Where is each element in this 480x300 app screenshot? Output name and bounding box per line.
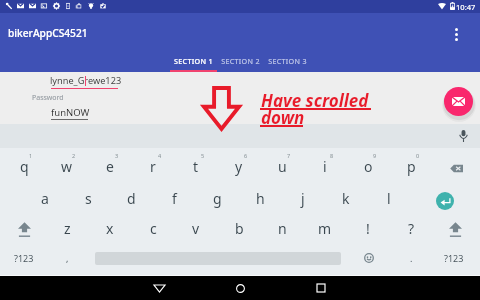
staticText: g [213,189,222,208]
button[interactable]: SECTION 3 [264,50,311,72]
button[interactable]: h [239,183,281,213]
button[interactable]: Back [147,276,171,300]
button[interactable]: l [368,183,410,213]
button[interactable]: ! [347,213,389,243]
button[interactable]: Compose message [444,87,473,116]
button[interactable]: a [24,183,66,213]
button[interactable]: e [89,151,131,181]
staticText: funNOW [51,106,90,119]
button[interactable]: Voice input [454,127,472,145]
staticText: x [106,219,114,238]
staticText: ? [408,219,415,238]
staticText: c [150,219,157,238]
staticText: d [127,189,136,208]
button[interactable]: Shift [3,215,45,243]
staticText: k [342,189,350,208]
staticText: m [318,219,332,238]
staticText: 1 [29,152,33,159]
button[interactable]: j [282,183,324,213]
staticText: 5 [201,152,205,159]
button[interactable]: More options [444,22,468,46]
staticText: 3 [115,152,119,159]
button[interactable]: m [304,213,346,243]
staticText: a [41,189,49,208]
staticText: h [256,189,265,208]
staticText: ?123 [14,252,34,264]
staticText: . [410,252,413,264]
button[interactable]: c [132,213,174,243]
staticText: 4 [158,152,162,159]
button[interactable]: p [390,151,432,181]
button[interactable]: i [304,151,346,181]
button[interactable]: s [67,183,109,213]
button[interactable]: n [261,213,303,243]
staticText: j [301,189,305,208]
staticText: bikerAppCS4521 [8,26,88,40]
button[interactable]: k [325,183,367,213]
staticText: r [150,157,156,176]
button[interactable]: Shift [434,215,476,243]
staticText: w [61,157,73,176]
staticText: Have scrolled [261,89,369,112]
button[interactable]: w [46,151,88,181]
staticText: lynne_Grewe123 [50,74,122,87]
staticText: t [193,157,199,176]
staticText: b [235,219,244,238]
button[interactable]: z [46,213,88,243]
staticText: ?123 [444,252,464,264]
staticText: p [407,157,416,176]
staticText: SECTION 3 [268,56,307,66]
staticText: 9 [373,152,377,159]
button[interactable]: v [175,213,217,243]
button[interactable]: Recents [309,276,333,300]
button[interactable]: g [196,183,238,213]
button[interactable]: y [218,151,260,181]
button[interactable]: SECTION 2 [217,50,264,72]
staticText: o [364,157,373,176]
staticText: l [387,189,391,208]
button[interactable]: t [175,151,217,181]
staticText: down [261,106,305,129]
staticText: 2 [72,152,76,159]
button[interactable]: q [3,151,45,181]
button[interactable]: Home [228,276,252,300]
button[interactable]: SECTION 1 [170,50,217,72]
staticText: , [66,252,69,264]
button[interactable]: r [132,151,174,181]
staticText: y [235,157,243,176]
staticText: s [85,189,92,208]
staticText: 6 [244,152,248,159]
button[interactable]: ? [390,213,432,243]
staticText: SECTION 1 [174,56,213,66]
staticText: ! [366,219,370,238]
staticText: i [323,157,327,176]
button[interactable]: . [390,244,432,272]
button[interactable]: ?123 [433,244,475,272]
staticText: 0 [416,152,420,159]
button[interactable]: Backspace [435,154,477,182]
button[interactable]: b [218,213,260,243]
button[interactable]: ?123 [3,244,45,272]
staticText: Password [32,93,64,103]
button[interactable]: Emoji [348,244,390,272]
button[interactable]: f [153,183,195,213]
button[interactable]: Enter [436,192,454,210]
staticText: 8 [330,152,334,159]
button[interactable]: o [347,151,389,181]
staticText: n [278,219,287,238]
staticText: z [64,219,71,238]
staticText: q [20,157,29,176]
staticText: u [278,157,287,176]
staticText: SECTION 2 [221,56,260,66]
staticText: v [192,219,200,238]
staticText: 10:47 [456,2,476,12]
staticText: f [172,189,177,208]
button[interactable]: , [46,244,88,272]
staticText: e [106,157,114,176]
staticText: 7 [287,152,291,159]
button[interactable]: d [110,183,152,213]
button[interactable]: u [261,151,303,181]
button[interactable]: x [89,213,131,243]
